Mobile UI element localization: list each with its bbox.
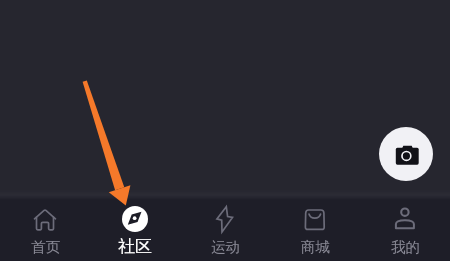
staticText: 我的 xyxy=(391,238,420,256)
button[interactable]: 运动 xyxy=(180,200,270,261)
button[interactable]: Camera xyxy=(379,127,433,181)
staticText: 首页 xyxy=(31,238,60,256)
button[interactable]: 我的 xyxy=(360,200,450,261)
button[interactable]: 社区 xyxy=(90,200,180,261)
button[interactable]: 首页 xyxy=(0,200,90,261)
staticText: 运动 xyxy=(211,238,240,256)
staticText: 社区 xyxy=(118,236,152,257)
staticText: 商城 xyxy=(301,238,330,256)
button[interactable]: 商城 xyxy=(270,200,360,261)
